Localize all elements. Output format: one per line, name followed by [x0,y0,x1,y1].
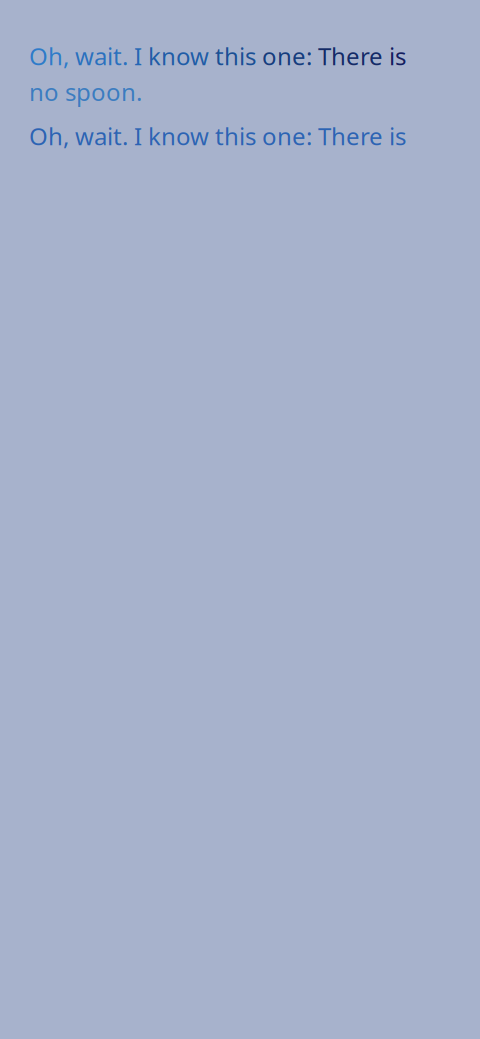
staticText: Oh, wait. I know this one: There is [29,120,406,152]
staticText: one: [262,40,318,72]
staticText: Oh, [29,40,75,72]
staticText: I [134,40,148,72]
staticText: wait. [75,40,134,72]
staticText: no spoon. [29,76,142,108]
staticText: know [148,40,215,72]
staticText: is [389,40,406,72]
staticText: this [215,40,262,72]
staticText: There [318,40,389,72]
